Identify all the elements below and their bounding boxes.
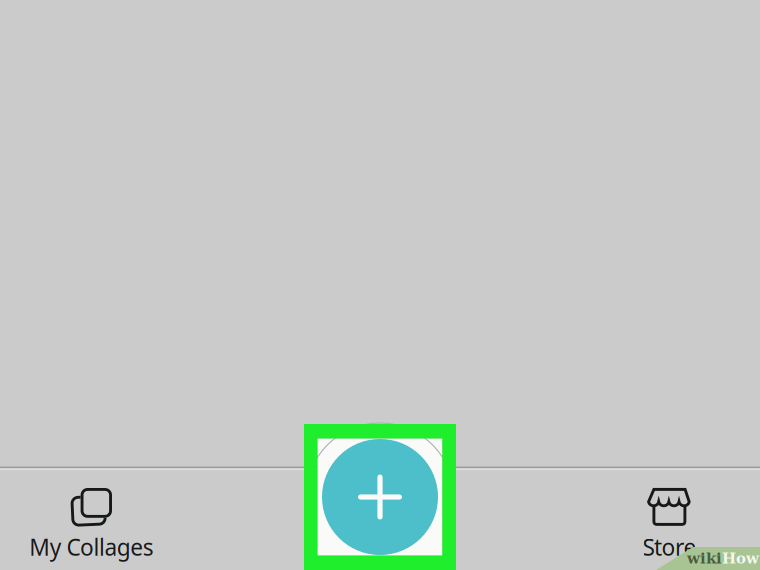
button[interactable]: New collage [322,439,438,555]
button[interactable]: My Collages [0,476,196,570]
button[interactable]: Store [564,476,760,570]
staticText: Store [643,532,696,562]
staticText: How [722,549,759,567]
staticText: wiki [687,549,722,567]
staticText: My Collages [29,532,154,562]
